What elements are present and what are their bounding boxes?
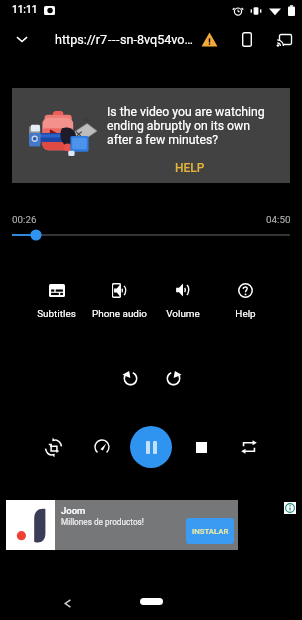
staticText: Subtitles: [37, 308, 76, 320]
staticText: https://r7: [55, 32, 108, 47]
staticText: INSTALAR: [192, 527, 229, 536]
button[interactable]: Playback speed: [86, 431, 118, 463]
button[interactable]: Stop: [185, 431, 217, 463]
staticText: Millones de productos!: [61, 517, 144, 527]
button[interactable]: Repeat: [233, 431, 265, 463]
staticText: Phone audio: [92, 308, 147, 320]
button[interactable]: Play on phone: [233, 26, 260, 53]
button[interactable]: Pause: [130, 426, 172, 468]
staticText: -: [112, 32, 116, 47]
staticText: 00:26: [12, 214, 37, 225]
button[interactable]: Rewind 10 seconds: [114, 362, 146, 394]
button[interactable]: Subtitles: [25, 281, 88, 320]
button[interactable]: Back: [55, 591, 79, 615]
button[interactable]: INSTALAR: [186, 518, 234, 544]
staticText: HELP: [175, 161, 205, 175]
button[interactable]: Cast: [270, 26, 297, 53]
button[interactable]: Phone audio: [88, 281, 151, 320]
staticText: Help: [235, 308, 256, 320]
button[interactable]: Warning: [196, 26, 223, 53]
button[interactable]: Is the video you are watching ending abr…: [12, 88, 290, 183]
staticText: Is the video you are watching ending abr…: [107, 105, 272, 147]
button[interactable]: Collapse: [8, 25, 36, 53]
staticText: -: [108, 32, 112, 47]
staticText: -: [116, 32, 120, 47]
staticText: 04:50: [266, 214, 291, 225]
staticText: 11:11: [12, 4, 38, 16]
staticText: Volume: [166, 308, 200, 320]
button[interactable]: Volume: [151, 281, 214, 320]
button[interactable]: Seek bar: [0, 228, 302, 242]
button[interactable]: Home: [140, 598, 163, 605]
staticText: sn-8vq54vo…: [120, 32, 193, 47]
button[interactable]: Joom: [6, 500, 238, 550]
button[interactable]: Help: [214, 281, 277, 320]
button[interactable]: Forward 10 seconds: [157, 362, 189, 394]
button[interactable]: Rotate: [37, 431, 69, 463]
button[interactable]: HELP: [175, 161, 205, 175]
staticText: Joom: [61, 505, 86, 516]
button[interactable]: Ad info: [284, 502, 296, 514]
